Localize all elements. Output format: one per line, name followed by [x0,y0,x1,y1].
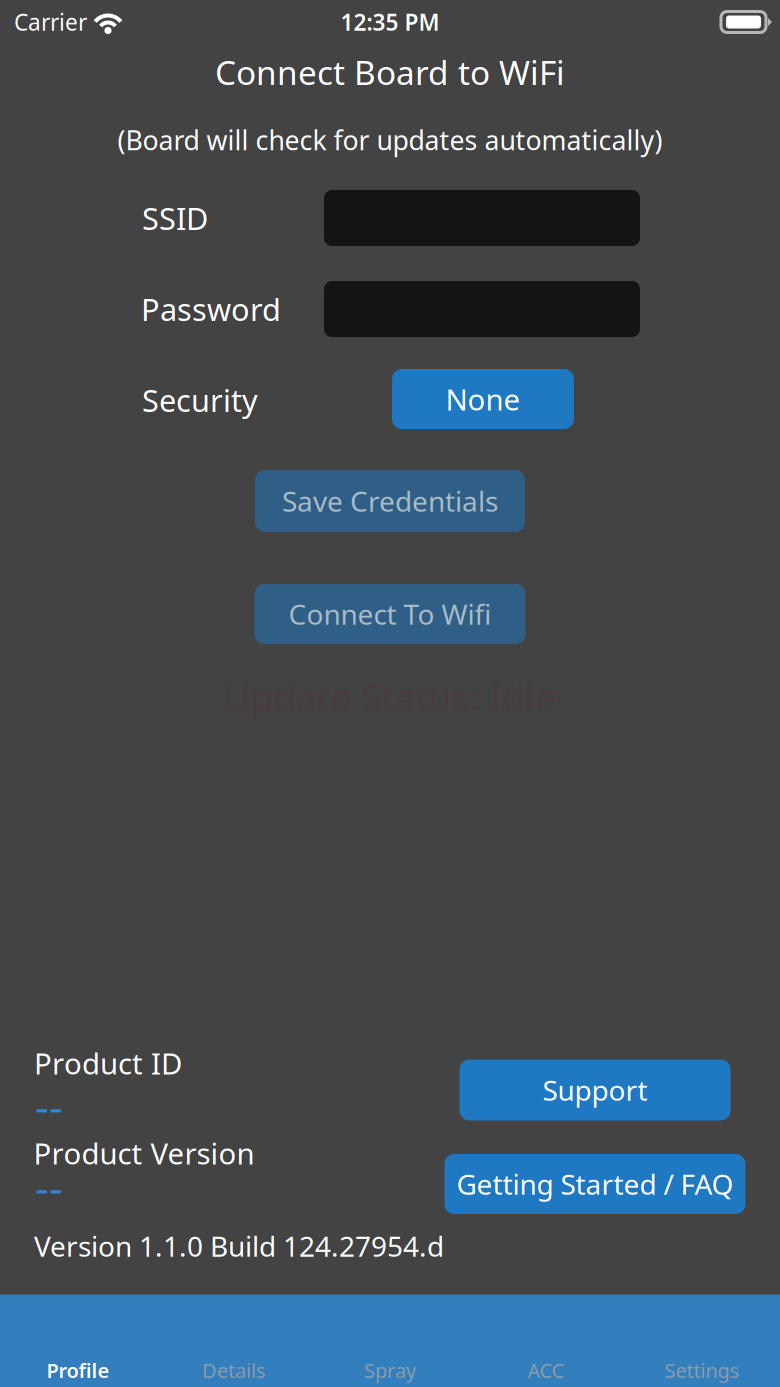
staticText: -- [35,1159,63,1215]
staticText: Getting Started / FAQ [456,1165,733,1203]
staticText: -- [35,1078,63,1134]
staticText: Settings [664,1357,739,1383]
button[interactable]: None [392,369,574,429]
staticText: ACC [527,1357,564,1383]
staticText: Product ID [34,1043,182,1082]
staticText: Details [202,1357,266,1383]
staticText: Connect Board to WiFi [215,50,565,94]
staticText: None [445,379,520,418]
button[interactable]: Product ID value [35,1078,63,1134]
button[interactable]: Details [156,1294,312,1387]
staticText: SSID [142,198,208,238]
button[interactable]: ACC [468,1294,624,1387]
staticText: Spray [364,1357,416,1383]
button[interactable]: Support [459,1059,730,1120]
staticText: Version 1.1.0 Build 124.27954.d [34,1227,444,1265]
staticText: Connect To Wifi [288,595,491,633]
button[interactable]: Product Version value [35,1159,63,1215]
staticText: 12:35 PM [340,7,439,37]
button[interactable]: Getting Started / FAQ [444,1154,745,1214]
staticText: Password [141,289,281,329]
button[interactable]: Settings [624,1294,780,1387]
staticText: (Board will check for updates automatica… [117,122,662,158]
button[interactable]: Connect To Wifi [254,584,525,644]
staticText: Profile [46,1357,109,1383]
staticText: Save Credentials [282,482,498,520]
staticText: Product Version [33,1133,254,1172]
button[interactable]: Save Credentials [255,470,525,532]
button[interactable]: Profile [0,1294,156,1387]
staticText: Support [542,1071,647,1109]
staticText: Carrier [14,7,87,37]
button[interactable]: Spray [312,1294,468,1387]
staticText: Security [142,380,258,420]
